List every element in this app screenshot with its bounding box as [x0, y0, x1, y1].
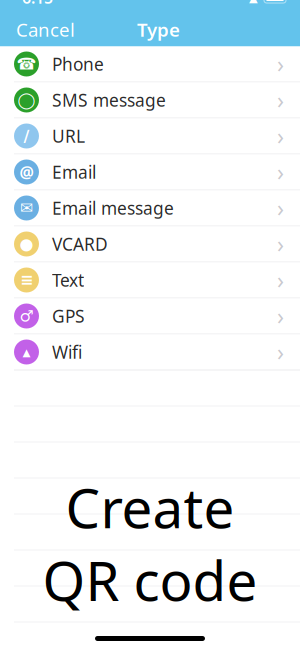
button[interactable]: ◯: [0, 82, 300, 118]
staticText: @: [19, 161, 33, 183]
staticText: QR code: [42, 543, 257, 616]
button[interactable]: Cancel: [0, 8, 91, 51]
staticText: ✉: [20, 199, 33, 217]
staticText: ›: [277, 337, 284, 367]
staticText: ●: [19, 235, 33, 253]
staticText: ◯: [17, 91, 35, 109]
staticText: ›: [277, 157, 284, 187]
staticText: ›: [277, 301, 284, 331]
staticText: ♂: [19, 307, 33, 325]
staticText: ▴: [22, 343, 30, 361]
staticText: Text: [52, 268, 84, 291]
staticText: Cancel: [16, 17, 75, 42]
staticText: SMS message: [52, 88, 166, 111]
button[interactable]: ●: [0, 226, 300, 262]
staticText: Create: [65, 471, 234, 543]
staticText: ›: [277, 49, 284, 79]
button[interactable]: ▴: [0, 334, 300, 370]
button[interactable]: ♂: [0, 298, 300, 334]
staticText: Email: [52, 160, 96, 183]
staticText: ☎: [16, 55, 36, 73]
staticText: ›: [277, 85, 284, 115]
staticText: ›: [277, 265, 284, 295]
staticText: ›: [277, 193, 284, 223]
staticText: Email message: [52, 196, 174, 219]
button[interactable]: @: [0, 154, 300, 190]
button[interactable]: ∕: [0, 118, 300, 154]
button[interactable]: ✉: [0, 190, 300, 226]
staticText: GPS: [52, 304, 85, 327]
staticText: 6:15: [22, 0, 53, 8]
staticText: Type: [137, 17, 180, 42]
staticText: Wifi: [52, 340, 82, 363]
staticText: URL: [52, 124, 85, 147]
staticText: VCARD: [52, 232, 108, 255]
staticText: ›: [277, 229, 284, 259]
staticText: ∕: [23, 127, 29, 145]
staticText: Phone: [52, 52, 104, 75]
button[interactable]: ☎: [0, 46, 300, 82]
button[interactable]: ≡: [0, 262, 300, 298]
staticText: ›: [277, 121, 284, 151]
staticText: ▴: [249, 0, 258, 7]
staticText: ≡: [20, 271, 33, 289]
